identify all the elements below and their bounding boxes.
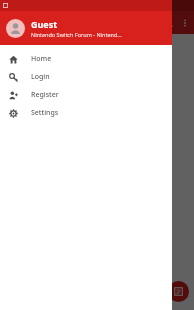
button[interactable]: Register — [0, 86, 172, 104]
button[interactable]: Create new thread — [168, 281, 189, 302]
staticText: Home — [31, 54, 52, 64]
staticText: Guest — [31, 18, 58, 30]
staticText: Login — [31, 72, 50, 82]
staticText: Settings — [31, 108, 59, 118]
button[interactable]: Home — [0, 50, 172, 68]
button[interactable]: Search — [160, 14, 177, 31]
staticText: Register — [31, 90, 59, 100]
staticText: Nintendo Switch Forum - Nintend… — [31, 31, 122, 38]
button[interactable]: Login — [0, 68, 172, 86]
button[interactable]: More options — [177, 15, 192, 30]
button[interactable]: Settings — [0, 104, 172, 122]
